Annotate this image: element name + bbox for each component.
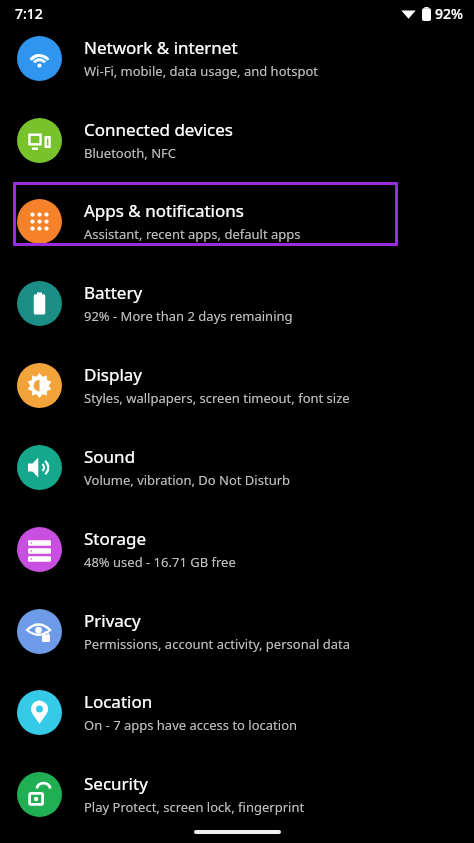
button[interactable]: Connected devices xyxy=(0,109,474,171)
other: Sound xyxy=(17,445,62,490)
staticText: Connected devices xyxy=(84,118,234,141)
button[interactable]: Sound xyxy=(0,436,474,498)
staticText: Storage xyxy=(84,527,147,550)
staticText: Assistant, recent apps, default apps xyxy=(84,225,301,243)
other: Display xyxy=(17,363,62,408)
other: Storage xyxy=(17,527,62,572)
button[interactable]: Display xyxy=(0,354,474,416)
staticText: Wi-Fi, mobile, data usage, and hotspot xyxy=(84,62,318,80)
staticText: On - 7 apps have access to location xyxy=(84,716,298,734)
staticText: 92% - More than 2 days remaining xyxy=(84,307,293,325)
staticText: Permissions, account activity, personal … xyxy=(84,635,350,653)
staticText: Sound xyxy=(84,445,136,468)
staticText: Display xyxy=(84,363,142,386)
other: Location xyxy=(17,690,62,735)
button[interactable]: Security xyxy=(0,763,474,825)
other: Connected devices xyxy=(17,118,62,163)
staticText: Styles, wallpapers, screen timeout, font… xyxy=(84,389,350,407)
other: Apps & notifications xyxy=(17,199,62,244)
staticText: 48% used - 16.71 GB free xyxy=(84,553,236,571)
staticText: Bluetooth, NFC xyxy=(84,144,177,162)
other: Battery xyxy=(17,281,62,326)
staticText: Apps & notifications xyxy=(84,199,244,222)
other: Security xyxy=(17,772,62,817)
staticText: Battery xyxy=(84,281,143,304)
staticText: 92% xyxy=(435,4,463,23)
button[interactable]: Battery xyxy=(0,272,474,334)
other: Privacy xyxy=(17,609,62,654)
staticText: Security xyxy=(84,772,148,795)
button[interactable]: Apps & notifications xyxy=(0,190,474,252)
staticText: Privacy xyxy=(84,609,141,632)
button[interactable]: Storage xyxy=(0,518,474,580)
other: Network & internet xyxy=(17,36,62,81)
staticText: Volume, vibration, Do Not Disturb xyxy=(84,471,291,489)
button[interactable]: Privacy xyxy=(0,600,474,662)
staticText: Network & internet xyxy=(84,36,238,59)
staticText: 7:12 xyxy=(15,4,43,23)
staticText: Location xyxy=(84,690,153,713)
button[interactable]: Location xyxy=(0,681,474,743)
button[interactable]: Network & internet xyxy=(0,27,474,89)
staticText: Play Protect, screen lock, fingerprint xyxy=(84,798,305,816)
